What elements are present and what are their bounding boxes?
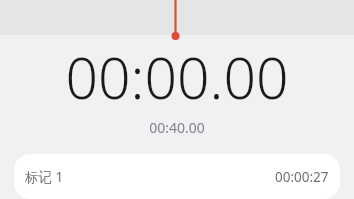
button[interactable]: 00:00.00 (0, 38, 354, 116)
staticText: 00:40.00 (149, 118, 205, 137)
other: Stopwatch hand marker (0, 0, 354, 199)
staticText: 00:00.00 (65, 38, 289, 116)
button[interactable]: 标记 1 (14, 154, 340, 199)
staticText: 标记 1 (25, 168, 64, 186)
staticText: 00:00:27 (275, 168, 329, 186)
